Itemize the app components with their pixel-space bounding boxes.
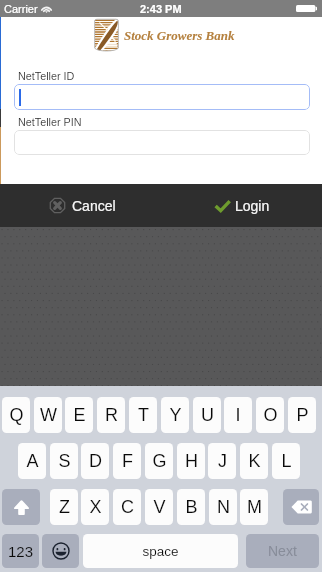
staticText: Login [235, 198, 270, 214]
staticText: B [185, 497, 198, 517]
button[interactable]: Y [161, 397, 189, 433]
staticText: F [122, 451, 133, 471]
staticText: NetTeller ID [18, 70, 75, 82]
staticText: M [247, 497, 262, 517]
button[interactable]: Emoji keyboard [42, 534, 79, 568]
staticText: Stock Growers Bank [124, 28, 235, 42]
staticText: L [281, 451, 292, 471]
staticText: Carrier [4, 3, 38, 15]
staticText: Cancel [72, 198, 116, 214]
button[interactable]: M [240, 489, 268, 525]
button[interactable]: O [256, 397, 284, 433]
button[interactable]: J [208, 443, 236, 479]
button[interactable]: C [113, 489, 141, 525]
button[interactable]: G [145, 443, 173, 479]
button[interactable]: X [81, 489, 109, 525]
button[interactable]: Backspace [283, 489, 319, 525]
button[interactable]: U [193, 397, 221, 433]
staticText: N [217, 497, 230, 517]
staticText: R [105, 405, 118, 425]
button[interactable]: Z [50, 489, 78, 525]
staticText: P [296, 405, 309, 425]
staticText: D [89, 451, 102, 471]
button[interactable]: E [65, 397, 93, 433]
staticText: O [263, 405, 278, 425]
staticText: W [40, 405, 57, 425]
button[interactable]: W [34, 397, 62, 433]
button[interactable]: Login [215, 198, 270, 214]
staticText: Y [169, 405, 182, 425]
staticText: Z [59, 497, 70, 517]
button[interactable]: T [129, 397, 157, 433]
staticText: E [73, 405, 86, 425]
button[interactable]: P [288, 397, 316, 433]
button[interactable]: Next [246, 534, 319, 568]
button[interactable]: N [209, 489, 237, 525]
staticText: I [235, 405, 241, 425]
staticText: NetTeller PIN [18, 116, 82, 128]
button[interactable] [14, 130, 310, 155]
staticText: J [218, 451, 227, 471]
staticText: 2:43 PM [140, 3, 182, 15]
staticText: A [26, 451, 39, 471]
staticText: C [121, 497, 134, 517]
staticText: T [138, 405, 149, 425]
staticText: Next [268, 543, 297, 559]
button[interactable]: Shift [2, 489, 40, 525]
button[interactable]: Q [2, 397, 30, 433]
button[interactable]: L [272, 443, 300, 479]
button[interactable]: Cancel [49, 197, 116, 214]
button[interactable]: B [177, 489, 205, 525]
staticText: S [58, 451, 71, 471]
button[interactable]: R [97, 397, 125, 433]
staticText: space [142, 544, 179, 559]
button[interactable]: S [50, 443, 78, 479]
staticText: K [248, 451, 261, 471]
staticText: V [153, 497, 166, 517]
button[interactable]: A [18, 443, 46, 479]
button[interactable]: I [224, 397, 252, 433]
staticText: Q [9, 405, 24, 425]
button[interactable]: F [113, 443, 141, 479]
button[interactable] [14, 84, 310, 110]
button[interactable]: D [81, 443, 109, 479]
staticText: G [152, 451, 167, 471]
other: Battery [296, 5, 317, 12]
staticText: U [201, 405, 214, 425]
button[interactable]: K [240, 443, 268, 479]
button[interactable]: H [177, 443, 205, 479]
button[interactable]: Numbers [2, 534, 39, 568]
staticText: 123 [8, 543, 34, 560]
other: Wi-Fi signal [41, 5, 52, 13]
button[interactable]: space [83, 534, 238, 568]
staticText: X [89, 497, 102, 517]
button[interactable]: V [145, 489, 173, 525]
staticText: H [185, 451, 198, 471]
